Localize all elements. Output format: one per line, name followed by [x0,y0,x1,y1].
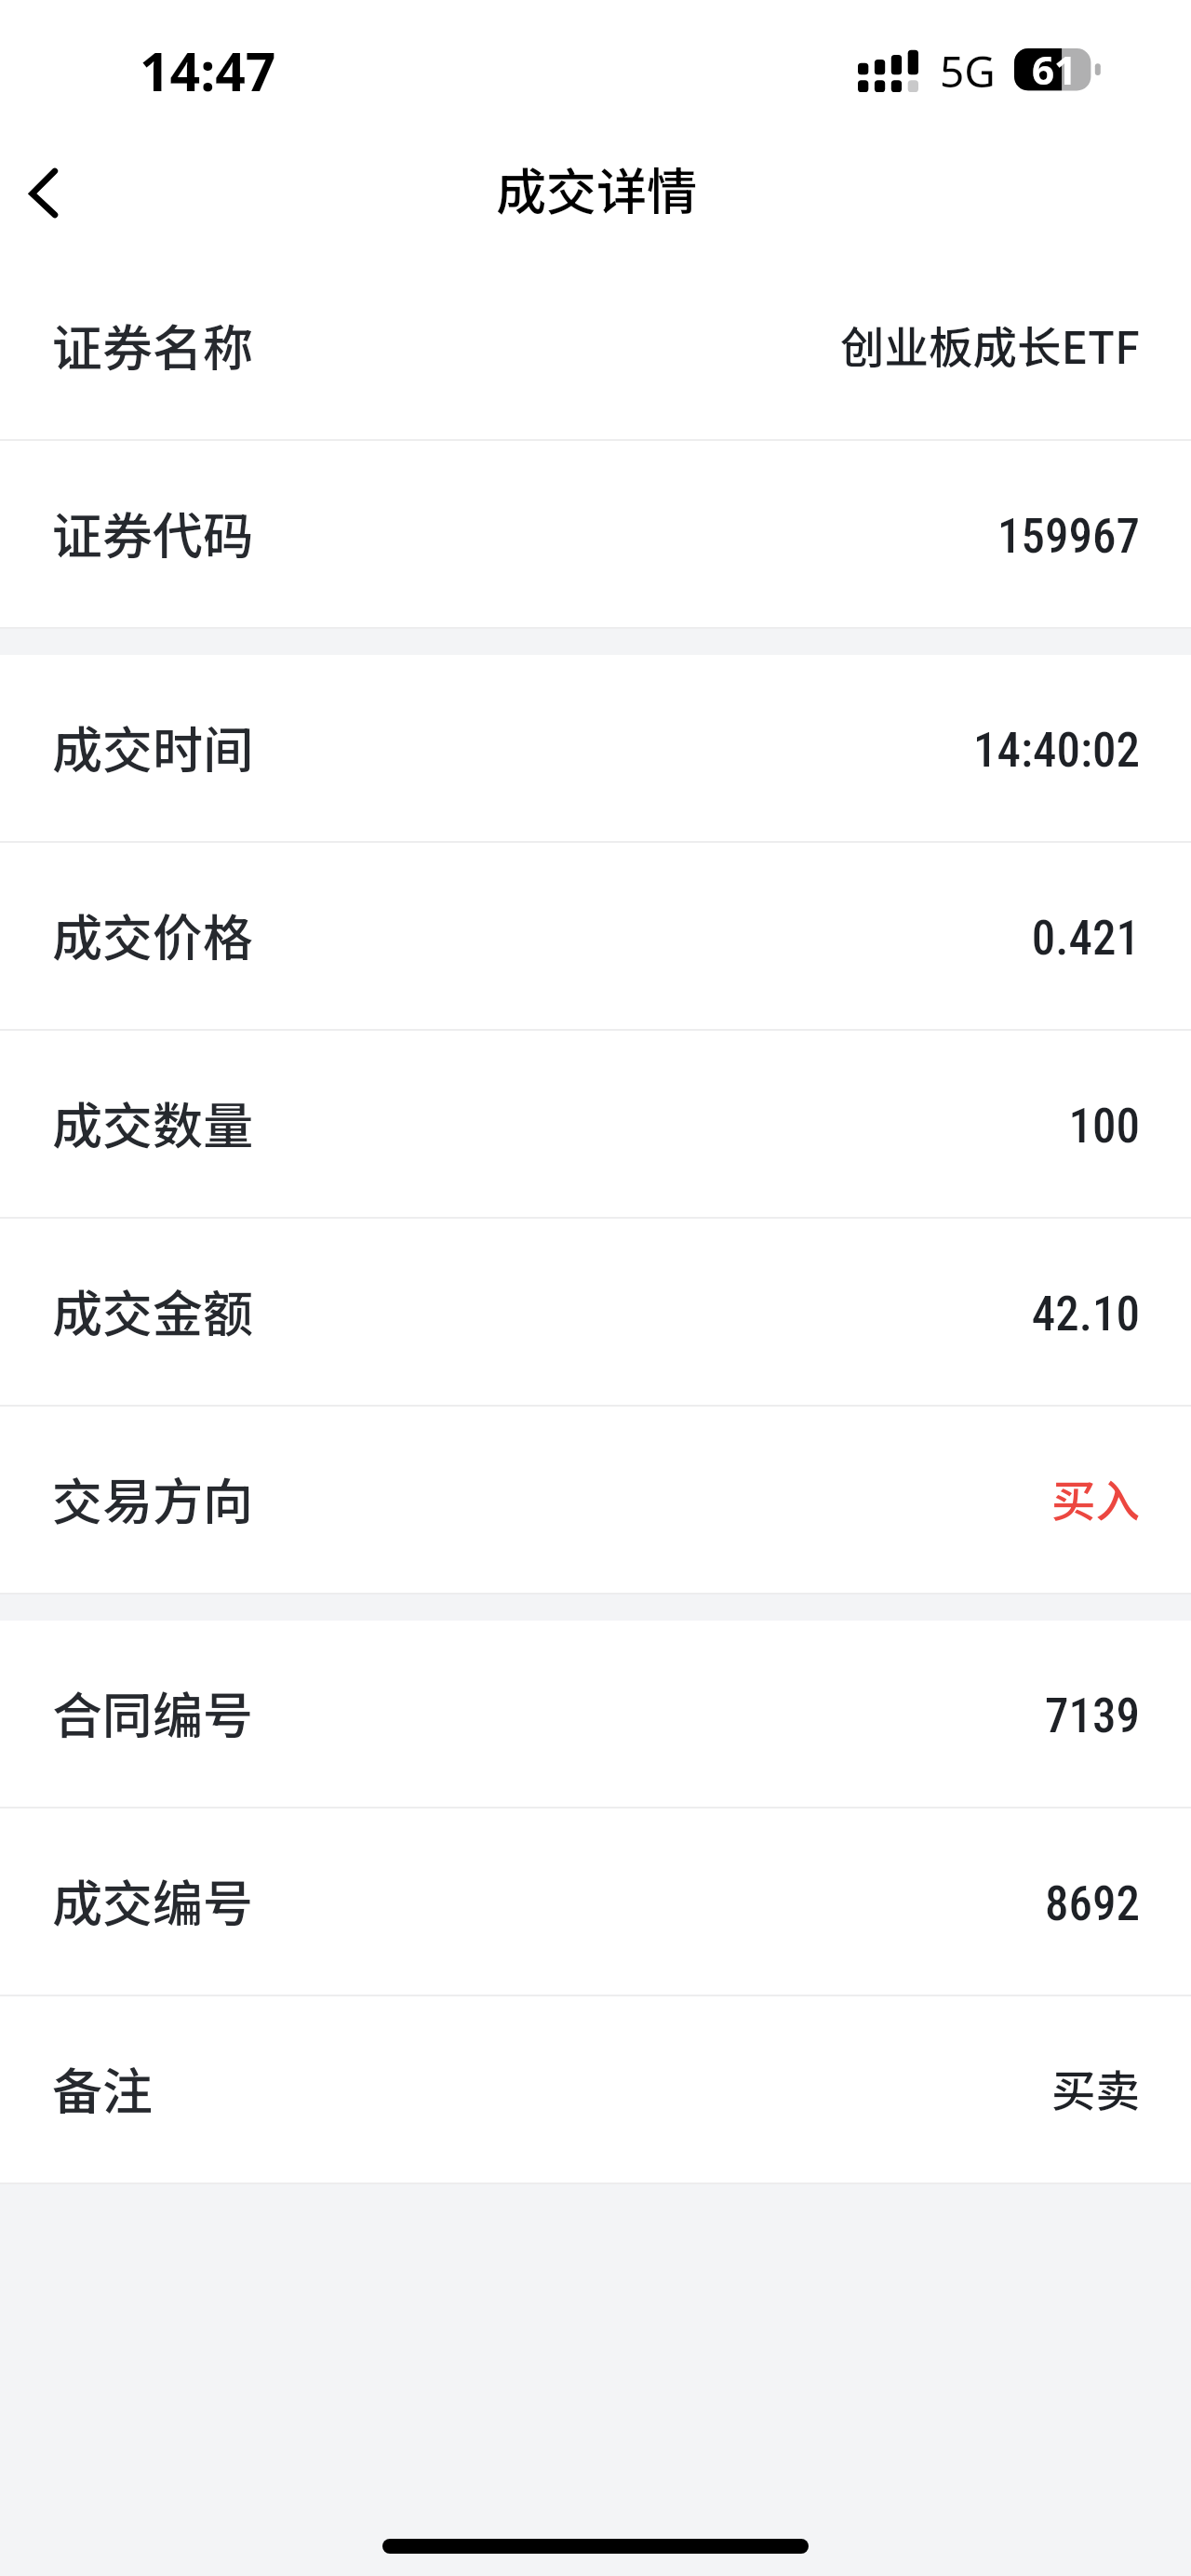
staticText: 14:47 [140,34,276,107]
staticText: 证券代码 [52,496,253,568]
staticText: 成交详情 [496,152,697,224]
staticText: 备注 [52,2051,153,2124]
staticText: 合同编号 [52,1675,253,1748]
staticText: 100 [1068,1099,1140,1155]
button[interactable]: 成交金额 [0,1219,1191,1407]
button[interactable]: 备注 [0,1996,1191,2184]
button[interactable]: 合同编号 [0,1621,1191,1809]
staticText: 0.421 [1031,911,1140,967]
staticText: 交易方向 [52,1462,253,1534]
staticText: 14:40:02 [973,723,1140,779]
staticText: 证券名称 [52,308,253,380]
staticText: 159967 [997,509,1140,565]
staticText: 8692 [1045,1876,1140,1932]
button[interactable]: 证券名称 [0,253,1191,441]
staticText: 成交价格 [52,898,253,970]
button[interactable]: 成交编号 [0,1809,1191,1996]
button[interactable]: 成交时间 [0,655,1191,843]
staticText: 成交编号 [52,1863,253,1936]
staticText: 5G [940,42,996,100]
button[interactable]: Back [0,140,93,234]
staticText: 创业板成长ETF [840,313,1140,377]
staticText: 成交数量 [52,1086,253,1158]
button[interactable]: 成交价格 [0,843,1191,1031]
button[interactable]: 证券代码 [0,441,1191,629]
staticText: 7139 [1045,1688,1140,1744]
staticText: 成交时间 [52,710,253,782]
staticText: 61 [1032,43,1077,96]
staticText: 买入 [1051,1466,1140,1530]
button[interactable]: 成交数量 [0,1031,1191,1219]
button[interactable]: 交易方向 [0,1407,1191,1595]
staticText: 成交金额 [52,1274,253,1346]
staticText: 42.10 [1031,1287,1140,1342]
staticText: 买卖 [1051,2056,1140,2120]
